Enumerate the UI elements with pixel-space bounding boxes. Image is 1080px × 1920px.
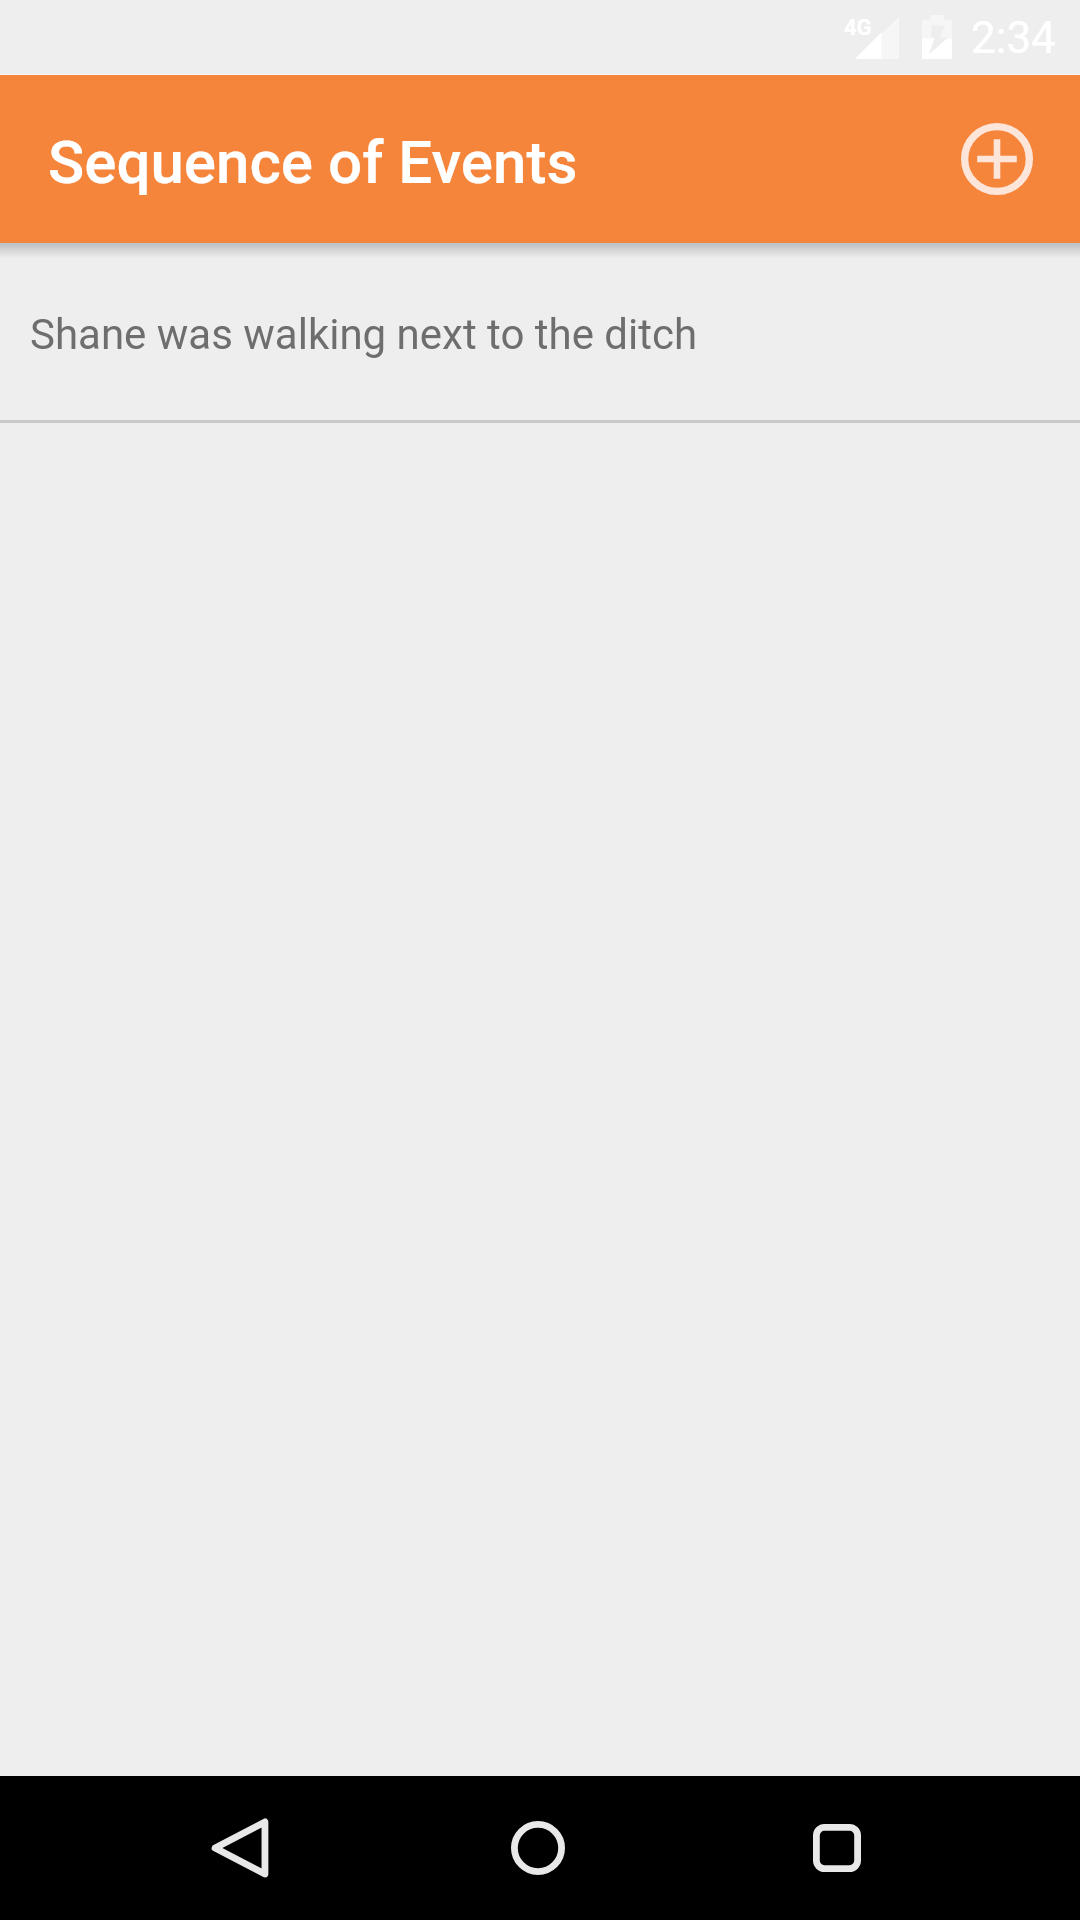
button[interactable]: Recents — [777, 1788, 897, 1908]
button[interactable]: Back — [180, 1788, 300, 1908]
staticText: 4G — [844, 15, 872, 41]
button[interactable]: Add — [943, 105, 1051, 213]
button[interactable]: Shane was walking next to the ditch — [0, 243, 1080, 423]
button[interactable]: Home — [478, 1788, 598, 1908]
staticText: 2:34 — [971, 12, 1056, 64]
staticText: Shane was walking next to the ditch — [30, 310, 698, 359]
staticText: Sequence of Events — [48, 127, 578, 197]
